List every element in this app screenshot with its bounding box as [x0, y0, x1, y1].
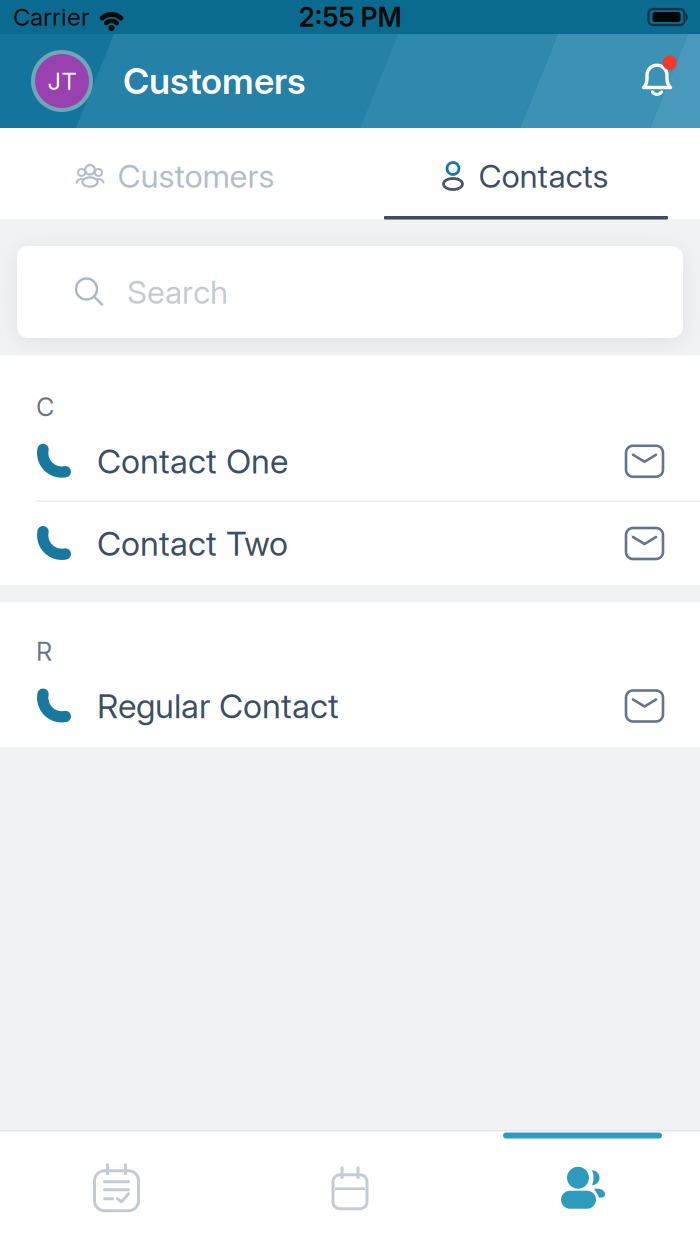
button[interactable]: Contact Two	[0, 502, 700, 585]
staticText: C	[36, 392, 54, 422]
staticText: Customers	[123, 60, 306, 102]
button[interactable]: Customers	[0, 128, 350, 216]
button[interactable]: Contacts	[467, 1131, 700, 1244]
staticText: Contact Two	[97, 524, 288, 563]
button[interactable]: Contact One	[0, 422, 700, 500]
staticText: Contact One	[97, 442, 288, 481]
button[interactable]: Calendar	[233, 1131, 467, 1244]
button[interactable]: Profile	[0, 50, 93, 112]
staticText: Customers	[117, 157, 274, 195]
button[interactable]: Search	[17, 219, 683, 355]
button[interactable]: Email Contact One	[626, 446, 700, 477]
button[interactable]: Email Regular Contact	[626, 690, 700, 721]
staticText: JT	[47, 67, 76, 95]
staticText: Carrier	[13, 3, 90, 31]
staticText: Contacts	[478, 157, 608, 195]
staticText: Search	[127, 273, 228, 311]
button[interactable]: Email Contact Two	[626, 528, 700, 559]
staticText: 2:55 PM	[298, 1, 401, 33]
staticText: Regular Contact	[97, 686, 339, 726]
staticText: R	[36, 637, 52, 666]
button[interactable]: Notifications	[640, 62, 700, 100]
button[interactable]: Contacts	[350, 128, 700, 216]
button[interactable]: Notes	[0, 1131, 233, 1244]
button[interactable]: Regular Contact	[0, 666, 700, 745]
